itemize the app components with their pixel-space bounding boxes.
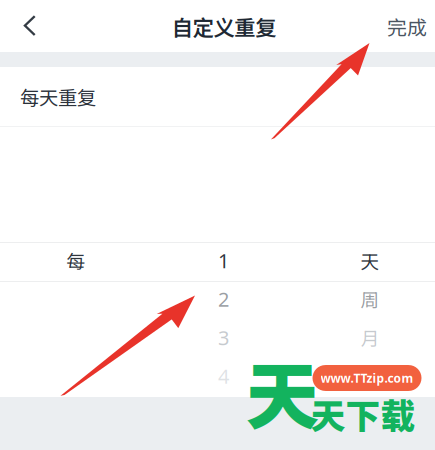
- button[interactable]: 返回: [4, 0, 56, 52]
- staticText: 每: [66, 247, 85, 274]
- staticText: 天: [245, 338, 318, 444]
- staticText: 周: [360, 285, 379, 312]
- staticText: 3: [218, 324, 229, 351]
- button[interactable]: 完成: [374, 0, 435, 53]
- button[interactable]: 自定义重复: [164, 0, 284, 53]
- staticText: 完成: [387, 12, 427, 41]
- staticText: 2: [218, 286, 229, 312]
- staticText: 天: [360, 247, 379, 274]
- staticText: 1: [218, 247, 229, 274]
- staticText: 月: [360, 324, 379, 351]
- staticText: 天下载: [310, 389, 415, 439]
- button[interactable]: 每天重复: [0, 67, 435, 126]
- staticText: 每天重复: [20, 82, 96, 110]
- staticText: 4: [218, 363, 229, 389]
- staticText: 自定义重复: [171, 11, 276, 42]
- staticText: www.TTzip.com: [320, 370, 413, 386]
